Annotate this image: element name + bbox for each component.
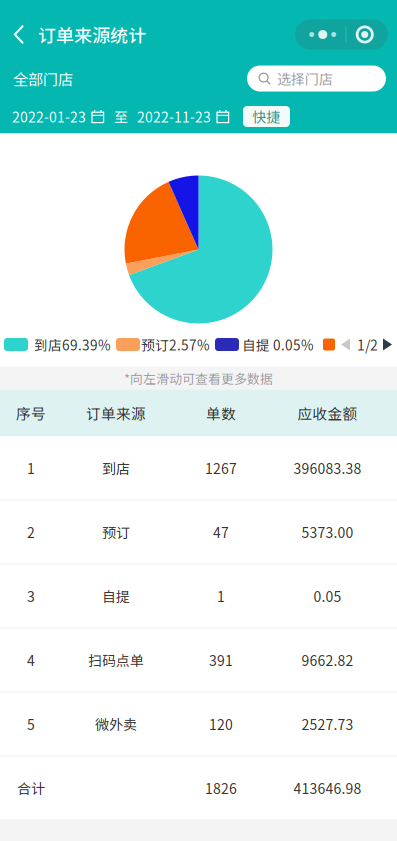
staticText: 预订2.57% xyxy=(141,335,210,354)
staticText: 到店 xyxy=(102,458,130,478)
staticText: 合计 xyxy=(17,778,45,798)
button[interactable]: 上一页 xyxy=(341,338,352,350)
staticText: 396083.38 xyxy=(293,458,361,478)
staticText: 自提 0.05% xyxy=(242,335,314,354)
button[interactable]: 快捷 xyxy=(243,106,290,127)
button[interactable]: 更多 xyxy=(295,19,388,49)
staticText: 至 xyxy=(114,106,128,127)
staticText: 1/2 xyxy=(357,334,378,355)
staticText: 2022-11-23 xyxy=(137,106,211,127)
staticText: 选择门店 xyxy=(277,68,333,89)
staticText: *向左滑动可查看更多数据 xyxy=(124,369,273,387)
staticText: 5373.00 xyxy=(301,522,353,542)
staticText: 2527.73 xyxy=(301,714,353,734)
staticText: 微外卖 xyxy=(95,714,137,734)
staticText: 订单来源统计 xyxy=(38,21,146,48)
staticText: 自提 xyxy=(102,586,130,606)
button[interactable]: 返回 xyxy=(6,14,32,54)
staticText: 预订 xyxy=(102,522,130,542)
staticText: 120 xyxy=(209,714,233,734)
staticText: 47 xyxy=(213,522,229,542)
staticText: 应收金额 xyxy=(297,402,357,424)
button[interactable]: 2022-11-23 xyxy=(137,106,230,127)
button[interactable]: 2022-01-23 xyxy=(12,106,105,127)
staticText: 5 xyxy=(27,714,35,734)
staticText: 单数 xyxy=(206,402,236,424)
staticText: 9662.82 xyxy=(301,650,353,670)
staticText: 1 xyxy=(27,458,35,478)
staticText: 到店69.39% xyxy=(34,335,111,354)
staticText: 快捷 xyxy=(252,106,280,127)
staticText: 序号 xyxy=(16,402,46,424)
button[interactable]: 选择门店 xyxy=(247,65,386,91)
staticText: 1 xyxy=(217,586,225,606)
staticText: 1267 xyxy=(205,458,237,478)
staticText: 2 xyxy=(27,522,35,542)
staticText: 4 xyxy=(27,650,35,670)
staticText: 订单来源 xyxy=(86,402,146,424)
staticText: 413646.98 xyxy=(293,778,361,798)
staticText: 0.05 xyxy=(313,586,341,606)
button[interactable]: 下一页 xyxy=(383,338,394,350)
staticText: 3 xyxy=(27,586,35,606)
staticText: 全部门店 xyxy=(13,67,73,90)
staticText: 2022-01-23 xyxy=(12,106,86,127)
staticText: 1826 xyxy=(205,778,237,798)
staticText: 391 xyxy=(209,650,233,670)
staticText: 扫码点单 xyxy=(88,650,144,670)
